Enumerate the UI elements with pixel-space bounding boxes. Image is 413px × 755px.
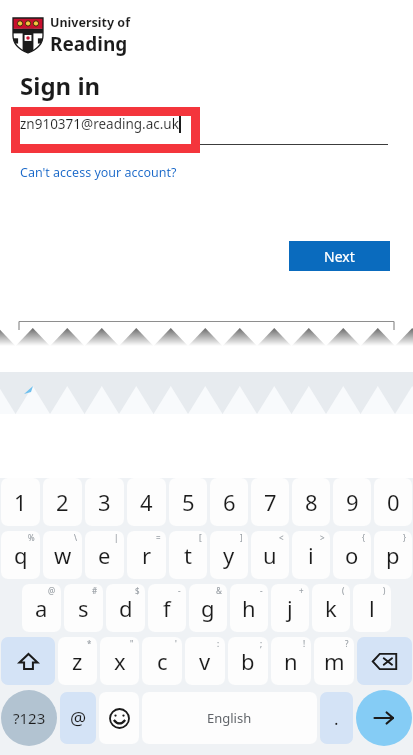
button[interactable]: 5 [169, 478, 207, 526]
button[interactable]: } [374, 531, 412, 579]
button[interactable]: 3 [85, 478, 124, 526]
staticText: 6 [223, 487, 236, 517]
button[interactable]: | [85, 531, 124, 579]
staticText: 0 [387, 487, 400, 517]
button[interactable]: 0 [374, 478, 412, 526]
button[interactable]: < [251, 531, 289, 579]
staticText: @ [48, 585, 56, 596]
staticText: ! [303, 638, 306, 649]
staticText: o [345, 540, 359, 570]
staticText: q [14, 540, 28, 570]
button[interactable]: % [1, 531, 40, 579]
button[interactable]: = [127, 531, 166, 579]
staticText: 8 [305, 487, 318, 517]
staticText: @ [70, 706, 87, 731]
staticText: # [92, 585, 98, 596]
staticText: i [308, 540, 314, 570]
button[interactable]: 1 [1, 478, 40, 526]
button[interactable]: 7 [251, 478, 289, 526]
staticText: y [223, 540, 235, 570]
staticText: > [320, 532, 325, 543]
staticText: j [287, 593, 293, 623]
button[interactable]: 9 [333, 478, 371, 526]
button[interactable]: ( [312, 584, 350, 632]
button[interactable]: @ [60, 692, 96, 744]
button[interactable]: 6 [210, 478, 248, 526]
staticText: r [142, 540, 152, 570]
staticText: n [284, 646, 298, 676]
staticText: u [263, 540, 277, 570]
staticText: | [114, 532, 119, 543]
staticText: 1 [14, 487, 27, 517]
button[interactable]: ) [353, 584, 391, 632]
staticText: University of [50, 14, 130, 31]
button[interactable]: 4 [127, 478, 166, 526]
staticText: a [35, 593, 48, 623]
staticText: & [216, 585, 222, 596]
staticText: Can't access your account? [20, 164, 177, 181]
button[interactable]: 2 [43, 478, 82, 526]
button[interactable]: Emoji [99, 692, 139, 744]
staticText: < [279, 532, 284, 543]
button[interactable]: ! [271, 637, 311, 685]
button[interactable]: 8 [292, 478, 330, 526]
staticText: ) [383, 585, 386, 596]
button[interactable]: English [142, 692, 317, 744]
button[interactable]: \ [43, 531, 82, 579]
staticText: " [130, 638, 134, 649]
button[interactable]: Can't access your account? [20, 164, 177, 181]
button[interactable]: ; [228, 637, 268, 685]
staticText: 5 [182, 487, 195, 517]
button[interactable]: @ [22, 584, 61, 632]
button[interactable]: & [189, 584, 227, 632]
staticText: b [241, 646, 255, 676]
staticText: p [386, 540, 400, 570]
button[interactable]: $ [106, 584, 145, 632]
button[interactable]: { [333, 531, 371, 579]
staticText: w [54, 540, 72, 570]
button[interactable]: " [100, 637, 139, 685]
staticText: 7 [264, 487, 277, 517]
staticText: % [28, 532, 35, 543]
button[interactable]: Shift [1, 637, 55, 685]
staticText: t [184, 540, 192, 570]
staticText: Sign in [20, 69, 101, 102]
button[interactable]: Backspace [357, 637, 412, 685]
button[interactable]: Next [289, 241, 390, 271]
button[interactable]: ] [210, 531, 248, 579]
button[interactable]: # [64, 584, 103, 632]
staticText: s [78, 593, 89, 623]
staticText: Next [324, 247, 355, 266]
button[interactable]: ?123 [1, 690, 57, 746]
button[interactable]: * [58, 637, 97, 685]
staticText: 2 [56, 487, 69, 517]
staticText: ? [345, 638, 349, 649]
button[interactable]: . [320, 692, 353, 744]
staticText: ' [175, 638, 177, 649]
staticText: . [334, 707, 339, 730]
staticText: - [178, 585, 181, 596]
staticText: ] [240, 532, 243, 543]
staticText: 3 [98, 487, 111, 517]
button[interactable]: [ [169, 531, 207, 579]
button[interactable]: zn910371@reading.ac.uk [20, 115, 181, 133]
staticText: Reading [50, 31, 128, 57]
staticText: z [72, 646, 83, 676]
button[interactable]: > [292, 531, 330, 579]
staticText: { [362, 532, 366, 543]
button[interactable]: Go [356, 690, 412, 746]
button[interactable]: : [185, 637, 225, 685]
staticText: \ [74, 532, 77, 543]
staticText: 4 [140, 487, 153, 517]
staticText: ; [260, 638, 263, 649]
button[interactable]: ' [142, 637, 182, 685]
button[interactable]: + [271, 584, 309, 632]
button[interactable]: ? [314, 637, 354, 685]
button[interactable]: - [230, 584, 268, 632]
button[interactable]: - [148, 584, 186, 632]
staticText: g [201, 593, 215, 623]
staticText: 9 [346, 487, 359, 517]
staticText: * [87, 638, 92, 649]
staticText: + [299, 585, 304, 596]
staticText: zn910371@reading.ac.uk [20, 115, 179, 133]
